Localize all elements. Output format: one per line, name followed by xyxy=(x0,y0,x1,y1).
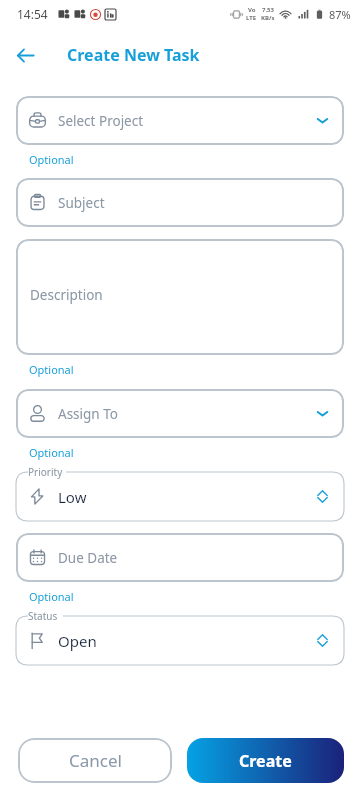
staticText: 14:54 xyxy=(17,6,48,22)
staticText: Create xyxy=(239,750,292,772)
staticText: Select Project xyxy=(58,112,144,130)
staticText: 7.53 xyxy=(262,6,274,14)
staticText: Optional xyxy=(29,362,74,377)
staticText: Description xyxy=(30,286,103,304)
button[interactable]: Description xyxy=(16,239,344,355)
staticText: 87% xyxy=(329,7,351,22)
staticText: Cancel xyxy=(69,749,122,772)
button[interactable]: Select Project xyxy=(16,96,344,145)
button[interactable]: Assign To xyxy=(16,389,344,438)
staticText: Due Date xyxy=(58,549,118,567)
button[interactable]: Back xyxy=(8,38,42,72)
staticText: Assign To xyxy=(58,405,118,423)
staticText: KB/s xyxy=(261,14,275,22)
button[interactable]: Due Date xyxy=(16,533,344,582)
staticText: Open xyxy=(58,631,97,651)
staticText: Status xyxy=(28,609,58,623)
button[interactable]: Subject xyxy=(16,178,344,227)
staticText: LTE xyxy=(246,14,257,22)
button[interactable]: Status xyxy=(16,616,344,665)
button[interactable]: Priority xyxy=(16,472,344,521)
staticText: Low xyxy=(58,487,87,507)
staticText: Priority xyxy=(28,465,63,479)
staticText: Vo xyxy=(248,6,256,14)
staticText: Subject xyxy=(58,194,105,212)
staticText: Create New Task xyxy=(67,44,200,66)
staticText: Optional xyxy=(29,589,74,604)
button[interactable]: Create xyxy=(187,738,344,783)
staticText: Optional xyxy=(29,152,74,167)
staticText: Optional xyxy=(29,445,74,460)
button[interactable]: Cancel xyxy=(18,738,172,783)
